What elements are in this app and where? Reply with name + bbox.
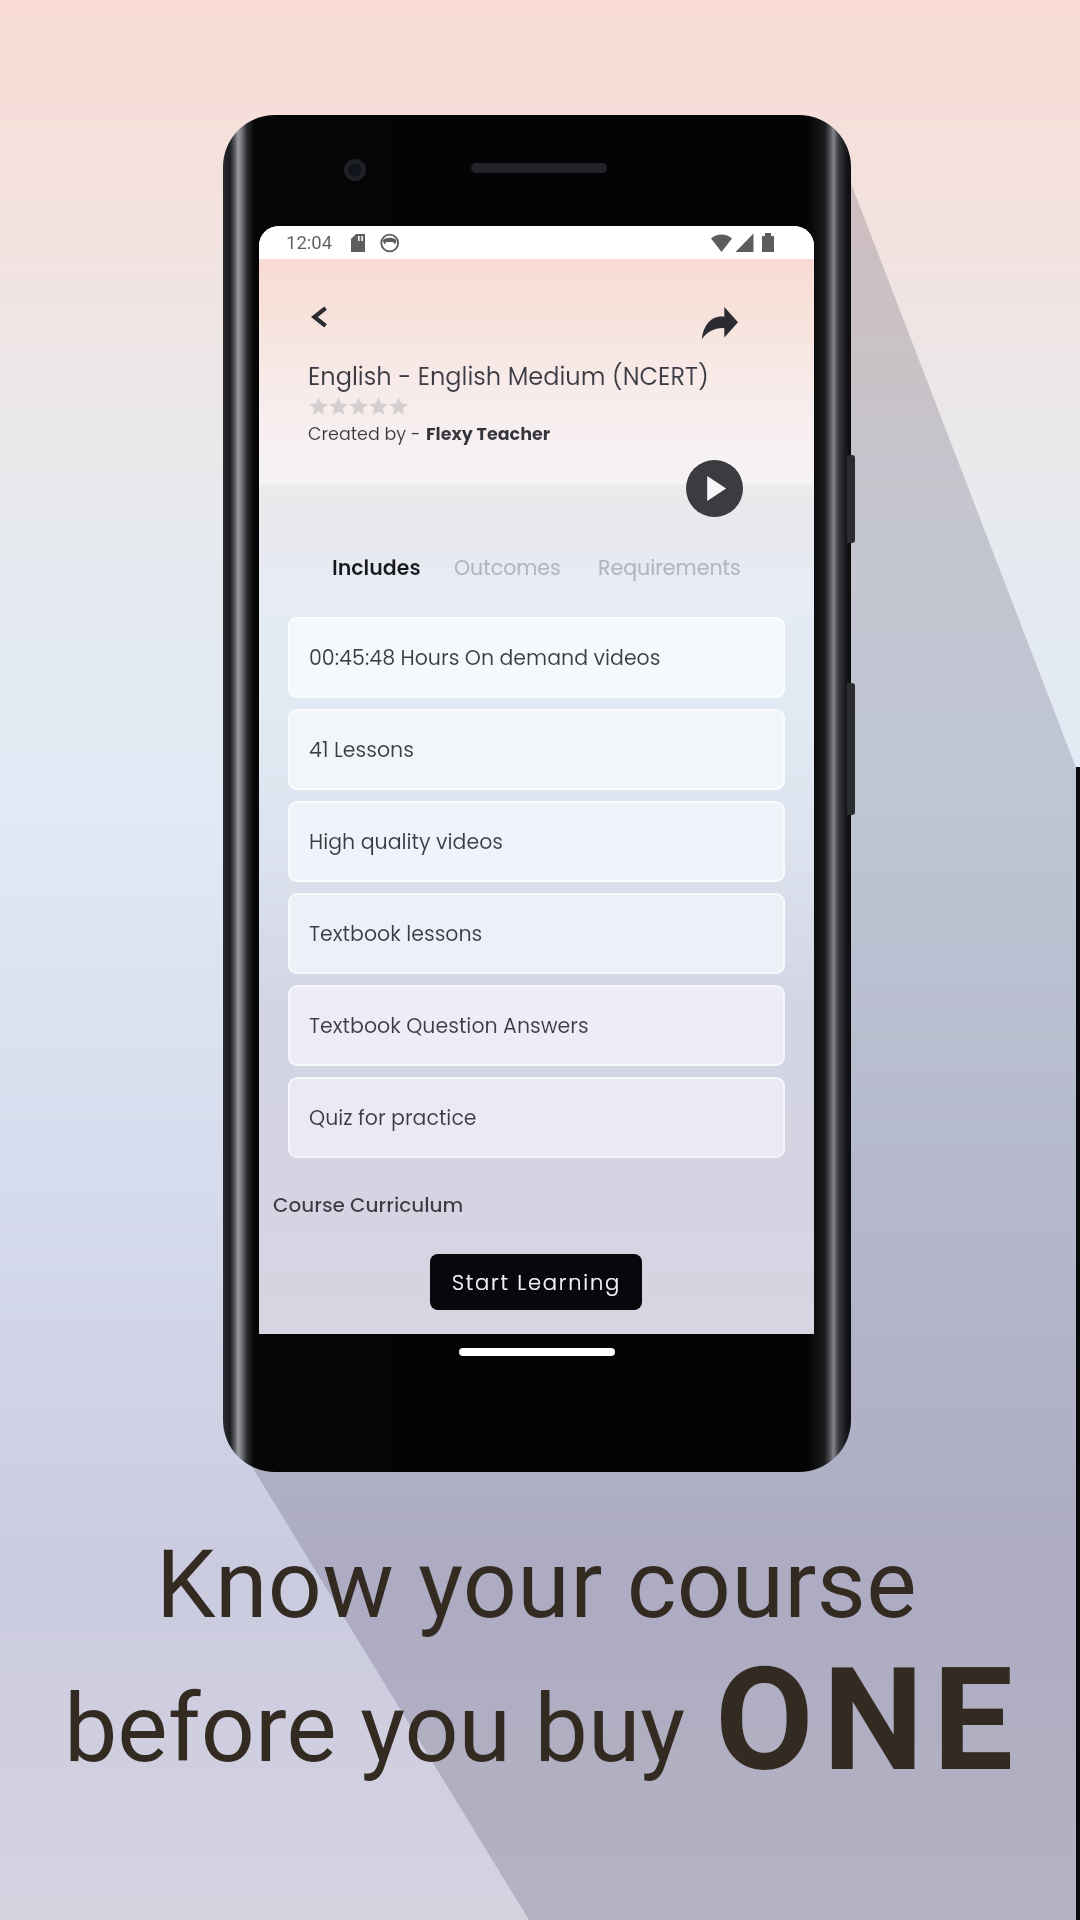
- button[interactable]: Textbook lessons: [288, 893, 785, 974]
- staticText: Course Curriculum: [273, 1191, 464, 1219]
- staticText: Quiz for practice: [309, 1103, 477, 1132]
- staticText: Requirements: [598, 553, 741, 582]
- button[interactable]: Back: [296, 293, 344, 341]
- button[interactable]: Start Learning: [430, 1254, 642, 1310]
- button[interactable]: Textbook Question Answers: [288, 985, 785, 1066]
- staticText: Flexy Teacher: [426, 422, 551, 447]
- staticText: High quality videos: [309, 827, 504, 856]
- staticText: Start Learning: [452, 1268, 621, 1297]
- staticText: 00:45:48 Hours On demand videos: [309, 643, 661, 672]
- staticText: Created by -: [308, 422, 426, 447]
- button[interactable]: 41 Lessons: [288, 709, 785, 790]
- staticText: before you buy: [64, 1673, 686, 1784]
- staticText: Outcomes: [454, 553, 561, 582]
- staticText: 12:04: [286, 232, 333, 254]
- button[interactable]: Share: [691, 296, 747, 352]
- staticText: ONE: [715, 1636, 1023, 1804]
- button[interactable]: High quality videos: [288, 801, 785, 882]
- button[interactable]: Quiz for practice: [288, 1077, 785, 1158]
- button[interactable]: Outcomes: [454, 545, 561, 590]
- staticText: 41 Lessons: [309, 735, 414, 764]
- staticText: Includes: [332, 553, 421, 582]
- staticText: English - English Medium (NCERT): [308, 360, 709, 394]
- staticText: Textbook lessons: [309, 919, 483, 948]
- button[interactable]: Requirements: [598, 545, 741, 590]
- button[interactable]: 00:45:48 Hours On demand videos: [288, 617, 785, 698]
- staticText: Textbook Question Answers: [309, 1011, 589, 1040]
- button[interactable]: Play preview: [686, 460, 743, 517]
- staticText: Know your course: [156, 1529, 917, 1640]
- button[interactable]: Includes: [332, 545, 421, 590]
